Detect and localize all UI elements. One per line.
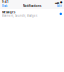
staticText: Banners, Sounds, Badges: [2, 14, 37, 17]
staticText: Notifications: [23, 4, 41, 8]
staticText: Messages: [2, 10, 15, 14]
button[interactable]: Edit: [57, 4, 62, 8]
staticText: ▂▃ ●: [55, 0, 62, 3]
staticText: 9:41: [2, 0, 9, 4]
button[interactable]: Back: [2, 4, 7, 8]
staticText: Back: [2, 4, 7, 8]
staticText: Edit: [57, 4, 62, 8]
